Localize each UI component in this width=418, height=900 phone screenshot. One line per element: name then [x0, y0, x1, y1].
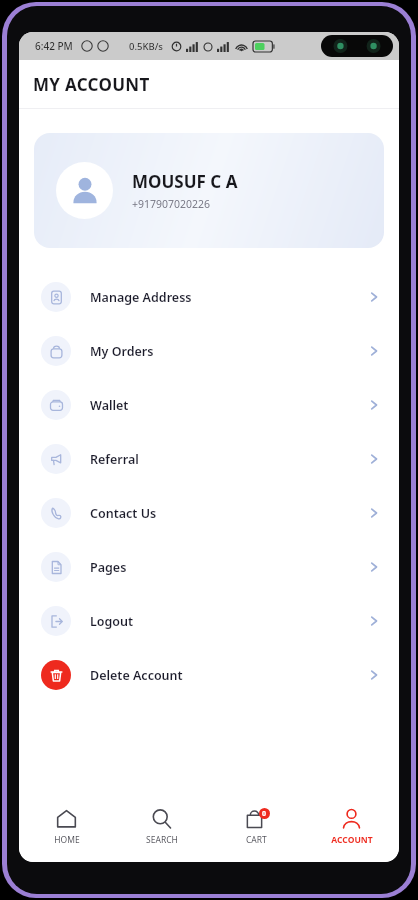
staticText: MY ACCOUNT: [33, 73, 150, 96]
button[interactable]: 0: [209, 808, 304, 862]
staticText: +917907020226: [132, 197, 211, 211]
button[interactable]: HOME: [19, 808, 114, 862]
staticText: My Orders: [90, 343, 154, 360]
staticText: CART: [246, 834, 267, 846]
button[interactable]: Wallet: [19, 378, 399, 432]
button[interactable]: Contact Us: [19, 486, 399, 540]
staticText: Delete Account: [90, 667, 183, 684]
staticText: Logout: [90, 613, 134, 630]
staticText: 6:42 PM: [35, 39, 73, 53]
staticText: Wallet: [90, 397, 129, 414]
button[interactable]: ACCOUNT: [304, 808, 399, 862]
button[interactable]: Referral: [19, 432, 399, 486]
button[interactable]: Delete Account: [19, 648, 399, 702]
staticText: ACCOUNT: [331, 834, 373, 846]
button[interactable]: My Orders: [19, 324, 399, 378]
staticText: Referral: [90, 451, 139, 468]
button[interactable]: Manage Address: [19, 270, 399, 324]
staticText: HOME: [54, 834, 80, 846]
staticText: MOUSUF C A: [132, 170, 238, 193]
staticText: Pages: [90, 559, 127, 576]
staticText: Contact Us: [90, 505, 157, 522]
staticText: SEARCH: [146, 834, 178, 846]
staticText: 0: [262, 809, 267, 819]
button[interactable]: Pages: [19, 540, 399, 594]
staticText: 0.5KB/s: [129, 40, 163, 53]
button[interactable]: Logout: [19, 594, 399, 648]
button[interactable]: SEARCH: [114, 808, 209, 862]
staticText: Manage Address: [90, 289, 192, 306]
button[interactable]: MOUSUF C A: [34, 133, 384, 248]
